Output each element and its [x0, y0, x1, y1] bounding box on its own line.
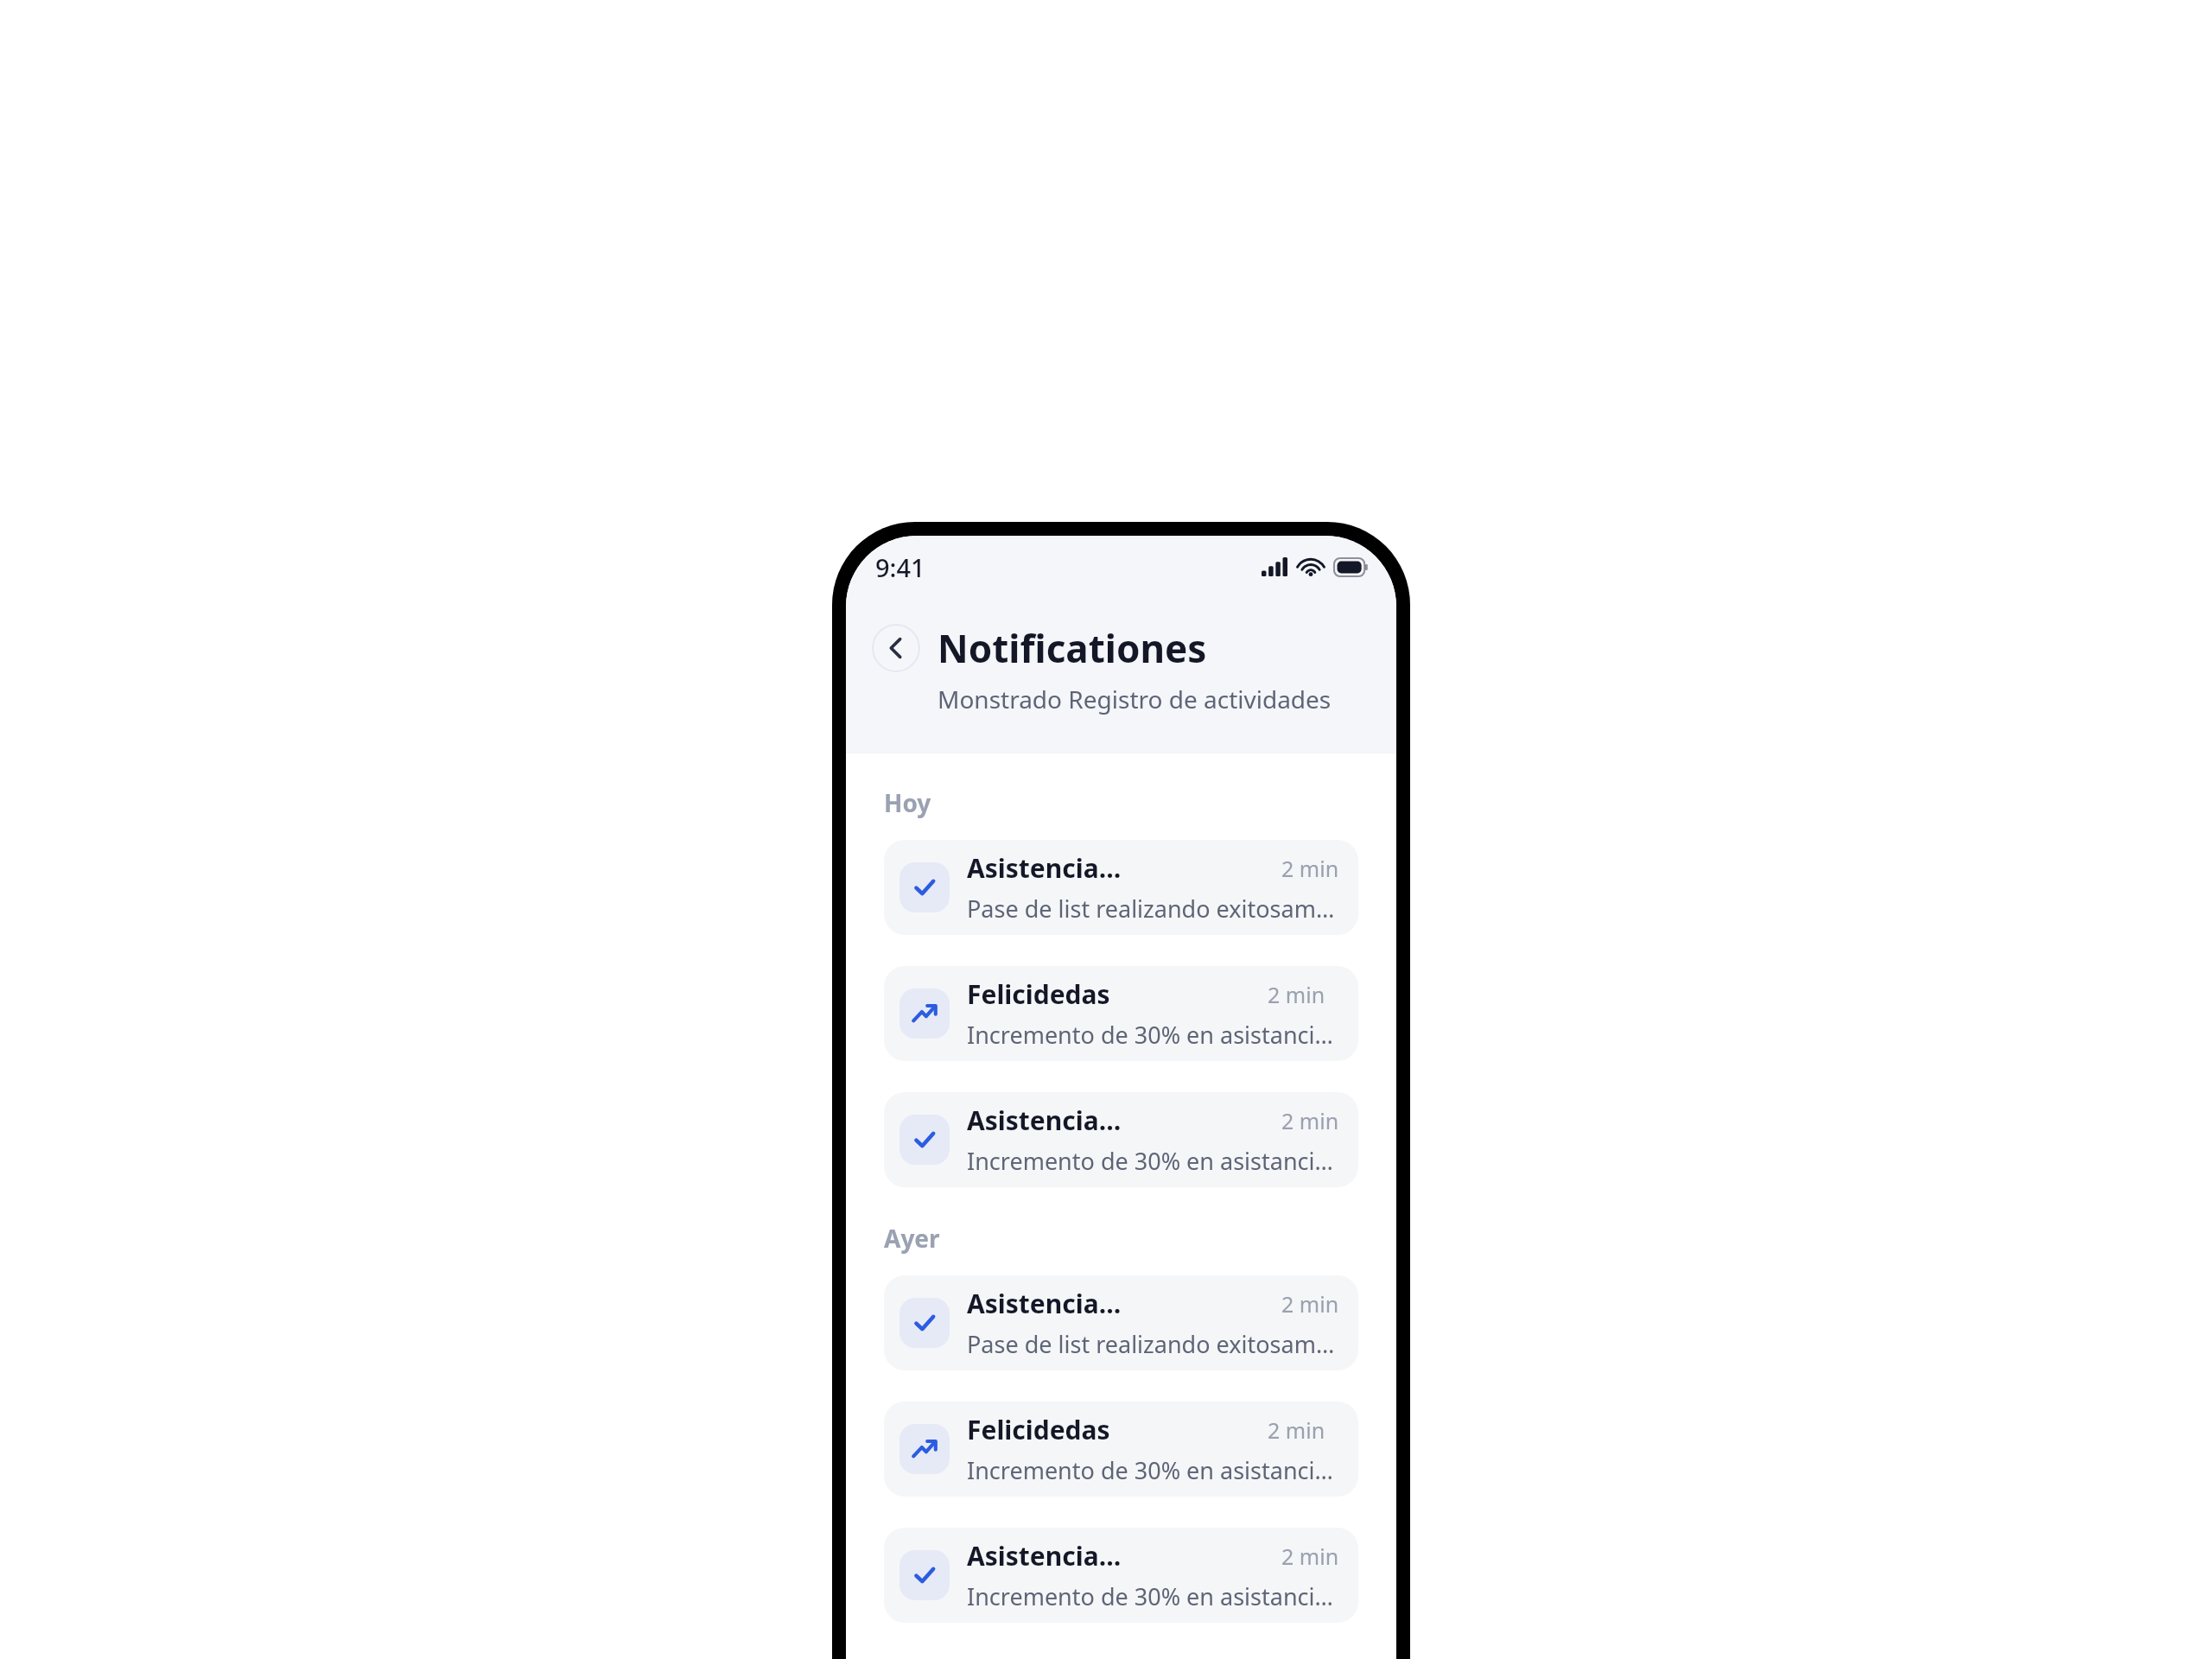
- staticText: Monstrado Registro de actividades: [938, 683, 1332, 715]
- staticText: 2 min: [1281, 1541, 1339, 1571]
- staticText: Pase de list realizando exitosamenete!: [967, 893, 1339, 925]
- staticText: Notificationes: [938, 622, 1207, 674]
- staticText: 2 min: [1281, 1106, 1339, 1135]
- staticText: Felicidedas: [967, 1412, 1110, 1447]
- button[interactable]: Asistencia registrada: [884, 840, 1358, 935]
- staticText: Incremento de 30% en asistancia este: [967, 1580, 1339, 1612]
- button[interactable]: Asistencia registrada: [884, 1275, 1358, 1370]
- staticText: Felicidedas: [967, 976, 1110, 1012]
- button[interactable]: Back: [872, 624, 920, 672]
- button[interactable]: Asistencia registrada: [884, 1528, 1358, 1623]
- staticText: Asistencia registrada: [967, 1286, 1124, 1321]
- button[interactable]: Felicidedas: [884, 1402, 1358, 1497]
- staticText: Pase de list realizando exitosamenete!: [967, 1328, 1339, 1360]
- staticText: Asistencia registrada: [967, 1538, 1124, 1573]
- button[interactable]: Asistencia registrada: [884, 1092, 1358, 1187]
- staticText: 2 min: [1268, 980, 1325, 1009]
- staticText: 2 min: [1281, 1289, 1339, 1319]
- staticText: Hoy: [884, 786, 931, 819]
- staticText: Ayer: [884, 1222, 940, 1255]
- staticText: Incremento de 30% en asistancia este: [967, 1454, 1339, 1486]
- staticText: Asistencia registrada: [967, 1103, 1124, 1138]
- staticText: 2 min: [1268, 1415, 1325, 1445]
- staticText: Incremento de 30% en asistancia este: [967, 1019, 1339, 1051]
- staticText: 2 min: [1281, 854, 1339, 883]
- staticText: Incremento de 30% en asistancia este: [967, 1145, 1339, 1177]
- staticText: 9:41: [875, 550, 925, 584]
- staticText: Asistencia registrada: [967, 850, 1124, 886]
- button[interactable]: Felicidedas: [884, 966, 1358, 1061]
